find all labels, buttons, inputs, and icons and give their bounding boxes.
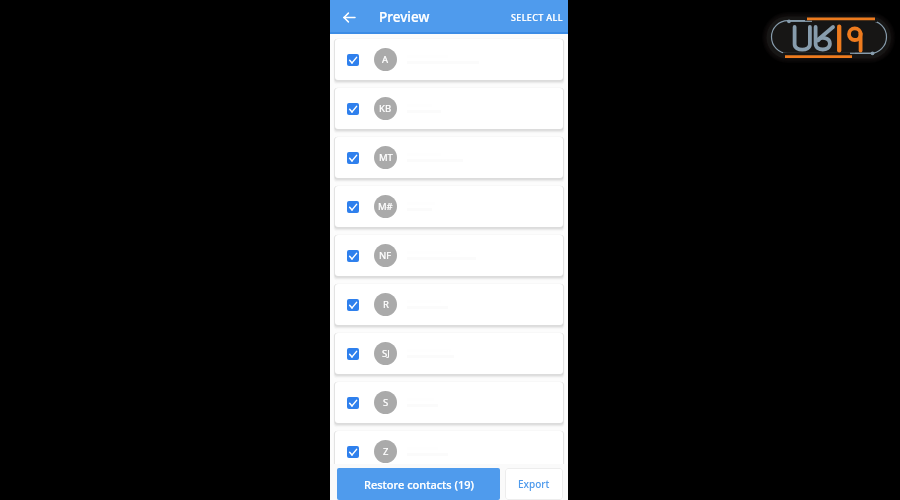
staticText: Restore contacts (19) — [364, 477, 474, 492]
button[interactable]: Selected — [335, 431, 563, 472]
button[interactable]: Selected — [347, 250, 359, 262]
button[interactable]: Selected — [347, 152, 359, 164]
button[interactable]: Selected — [347, 348, 359, 360]
staticText: NF — [379, 249, 392, 262]
staticText: M# — [378, 200, 393, 213]
button[interactable]: Selected — [335, 137, 563, 178]
button[interactable]: Selected — [335, 186, 563, 227]
button[interactable]: Selected — [335, 333, 563, 374]
button[interactable]: Back — [338, 6, 360, 28]
button[interactable]: Selected — [347, 103, 359, 115]
staticText: Export — [518, 477, 550, 491]
button[interactable]: Restore contacts (19) — [337, 468, 500, 500]
staticText: S — [383, 396, 389, 409]
button[interactable]: Export — [505, 468, 563, 500]
staticText: Z — [383, 445, 389, 458]
staticText: Preview — [379, 8, 430, 26]
button[interactable]: Selected — [347, 397, 359, 409]
staticText: R — [383, 298, 389, 311]
button[interactable]: Selected — [335, 39, 563, 80]
button[interactable]: Selected — [347, 299, 359, 311]
button[interactable]: SELECT ALL — [506, 3, 568, 31]
staticText: MT — [379, 151, 393, 164]
button[interactable]: Selected — [335, 88, 563, 129]
staticText: KB — [379, 102, 392, 115]
button[interactable]: Selected — [347, 446, 359, 458]
staticText: SJ — [382, 347, 390, 360]
button[interactable]: Selected — [335, 284, 563, 325]
staticText: SELECT ALL — [511, 11, 563, 23]
staticText: A — [382, 53, 389, 66]
button[interactable]: Selected — [335, 235, 563, 276]
button[interactable]: Selected — [335, 382, 563, 423]
button[interactable]: Selected — [347, 201, 359, 213]
button[interactable]: Selected — [347, 54, 359, 66]
